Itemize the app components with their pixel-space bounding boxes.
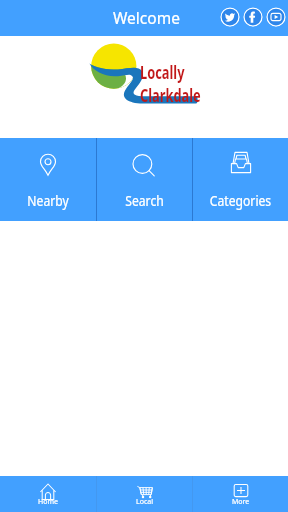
staticText: Welcome bbox=[113, 7, 180, 28]
staticText: Categories bbox=[209, 192, 271, 210]
staticText: More bbox=[232, 497, 250, 507]
staticText: Nearby bbox=[27, 192, 69, 210]
button[interactable]: YouTube bbox=[266, 7, 286, 27]
button[interactable]: Nearby bbox=[0, 138, 96, 221]
staticText: Clarkdale bbox=[140, 84, 201, 107]
staticText: Locally bbox=[140, 61, 184, 84]
button[interactable]: Search bbox=[97, 138, 192, 221]
button[interactable]: More bbox=[193, 476, 288, 512]
button[interactable]: Twitter bbox=[220, 7, 240, 27]
button[interactable]: Facebook bbox=[243, 7, 263, 27]
staticText: Home bbox=[38, 497, 58, 507]
staticText: Local bbox=[136, 497, 153, 507]
staticText: Search bbox=[125, 192, 164, 210]
button[interactable]: Home bbox=[0, 476, 96, 512]
button[interactable]: Local bbox=[97, 476, 192, 512]
button[interactable]: Categories bbox=[193, 138, 288, 221]
